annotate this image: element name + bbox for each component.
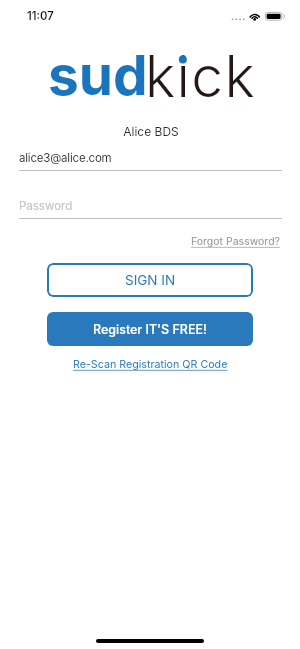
button[interactable]: SIGN IN [47, 263, 253, 297]
button[interactable]: Re-Scan Registration QR Code [73, 358, 228, 371]
staticText: Re-Scan Registration QR Code [73, 358, 228, 371]
staticText: Alice BDS [1, 124, 300, 139]
staticText: SIGN IN [125, 272, 176, 288]
staticText: Forgot Password? [191, 235, 280, 248]
staticText: 11:07 [27, 9, 54, 23]
button[interactable]: Register IT'S FREE! [47, 312, 253, 346]
staticText: sud [48, 42, 148, 109]
staticText: alice3@alice.com [19, 151, 112, 165]
staticText: Register IT'S FREE! [93, 322, 207, 337]
staticText: Password [19, 199, 73, 213]
staticText: kick [145, 42, 256, 111]
button[interactable]: Forgot Password? [191, 235, 280, 248]
